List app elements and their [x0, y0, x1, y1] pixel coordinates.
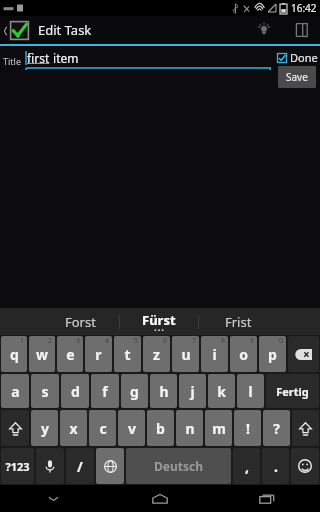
staticText: s [41, 382, 49, 401]
button[interactable]: Change language [96, 448, 124, 484]
button[interactable]: h [150, 374, 177, 408]
staticText: 0 [279, 336, 284, 346]
button[interactable]: j [179, 374, 206, 408]
staticText: l [248, 382, 253, 401]
button[interactable]: z [143, 336, 170, 372]
staticText: q [10, 345, 19, 364]
button[interactable]: Voice input [36, 448, 64, 484]
staticText: c [99, 419, 107, 438]
staticText: ? [273, 419, 280, 438]
button[interactable]: u [172, 336, 199, 372]
staticText: u [181, 345, 191, 364]
button[interactable]: m [205, 410, 232, 446]
staticText: f [102, 382, 108, 401]
staticText: a [11, 382, 20, 401]
button[interactable]: ! [234, 410, 261, 446]
staticText: v [128, 419, 136, 438]
staticText: Fürst [142, 311, 176, 329]
staticText: Frist [225, 313, 252, 331]
button[interactable]: Home [106, 485, 213, 512]
staticText: first [27, 50, 50, 66]
staticText: h [159, 382, 169, 401]
staticText: w [36, 345, 48, 364]
button[interactable]: a [1, 374, 29, 408]
staticText: item [50, 50, 79, 66]
staticText: . [274, 457, 278, 476]
staticText: p [268, 345, 277, 364]
button[interactable]: , [233, 448, 260, 484]
staticText: o [239, 345, 248, 364]
button[interactable]: v [118, 410, 145, 446]
button[interactable]: Hint [246, 16, 282, 44]
button[interactable]: e [57, 336, 83, 372]
staticText: ?123 [5, 459, 30, 474]
staticText: 5 [134, 336, 139, 346]
button[interactable]: o [230, 336, 257, 372]
staticText: e [66, 345, 75, 364]
button[interactable]: r [85, 336, 112, 372]
button[interactable]: f [91, 374, 119, 408]
button[interactable]: q [1, 336, 27, 372]
staticText: n [185, 419, 195, 438]
button[interactable]: l [237, 374, 264, 408]
staticText: Save [286, 70, 308, 84]
staticText: 6 [163, 336, 168, 346]
staticText: i [212, 345, 217, 364]
staticText: t [124, 345, 131, 364]
staticText: Forst [65, 313, 96, 331]
staticText: ! [246, 419, 250, 438]
button[interactable]: Navigate up [0, 21, 31, 40]
button[interactable]: . [262, 448, 289, 484]
button[interactable]: Fürst [120, 308, 198, 335]
staticText: , [245, 457, 249, 476]
button[interactable]: k [208, 374, 235, 408]
button[interactable]: Emoji [291, 448, 319, 484]
staticText: b [156, 419, 165, 438]
staticText: 9 [250, 336, 255, 346]
button[interactable]: Layout [282, 16, 320, 44]
button[interactable]: t [114, 336, 141, 372]
button[interactable]: g [121, 374, 148, 408]
button[interactable]: x [60, 410, 87, 446]
button[interactable]: y [31, 410, 58, 446]
button[interactable]: Deutsch [126, 448, 231, 484]
staticText: 2 [48, 336, 53, 346]
button[interactable]: c [89, 410, 116, 446]
button[interactable]: w [29, 336, 55, 372]
staticText: Title [3, 55, 21, 67]
button[interactable]: Frist [199, 308, 277, 335]
button[interactable]: Hide keyboard [0, 485, 106, 512]
button[interactable]: d [61, 374, 89, 408]
staticText: d [71, 382, 80, 401]
staticText: x [69, 419, 78, 438]
staticText: 3 [76, 336, 81, 346]
button[interactable]: s [31, 374, 59, 408]
button[interactable]: Forst [42, 308, 119, 335]
staticText: / [77, 457, 83, 476]
staticText: m [212, 419, 226, 438]
button[interactable]: Shift [1, 410, 29, 446]
staticText: Deutsch [154, 458, 203, 474]
button[interactable]: n [176, 410, 203, 446]
button[interactable]: p [259, 336, 286, 372]
button[interactable]: Fertig [266, 374, 319, 408]
staticText: r [95, 345, 102, 364]
staticText: 8 [221, 336, 226, 346]
button[interactable]: ?123 [1, 448, 34, 484]
button[interactable]: i [201, 336, 228, 372]
button[interactable]: Shift [292, 410, 319, 446]
staticText: 16:42 [291, 1, 317, 15]
button[interactable]: Delete [288, 336, 319, 372]
staticText: Edit Task [38, 21, 92, 39]
staticText: 1 [20, 336, 25, 346]
staticText: 7 [192, 336, 197, 346]
button[interactable]: Save [278, 66, 316, 88]
staticText: k [217, 382, 226, 401]
button[interactable]: / [66, 448, 94, 484]
button[interactable]: Recent apps [213, 485, 320, 512]
button[interactable]: b [147, 410, 174, 446]
staticText: y [41, 419, 49, 438]
staticText: 4 [105, 336, 110, 346]
button[interactable]: Done [277, 50, 320, 65]
button[interactable]: ? [263, 410, 290, 446]
